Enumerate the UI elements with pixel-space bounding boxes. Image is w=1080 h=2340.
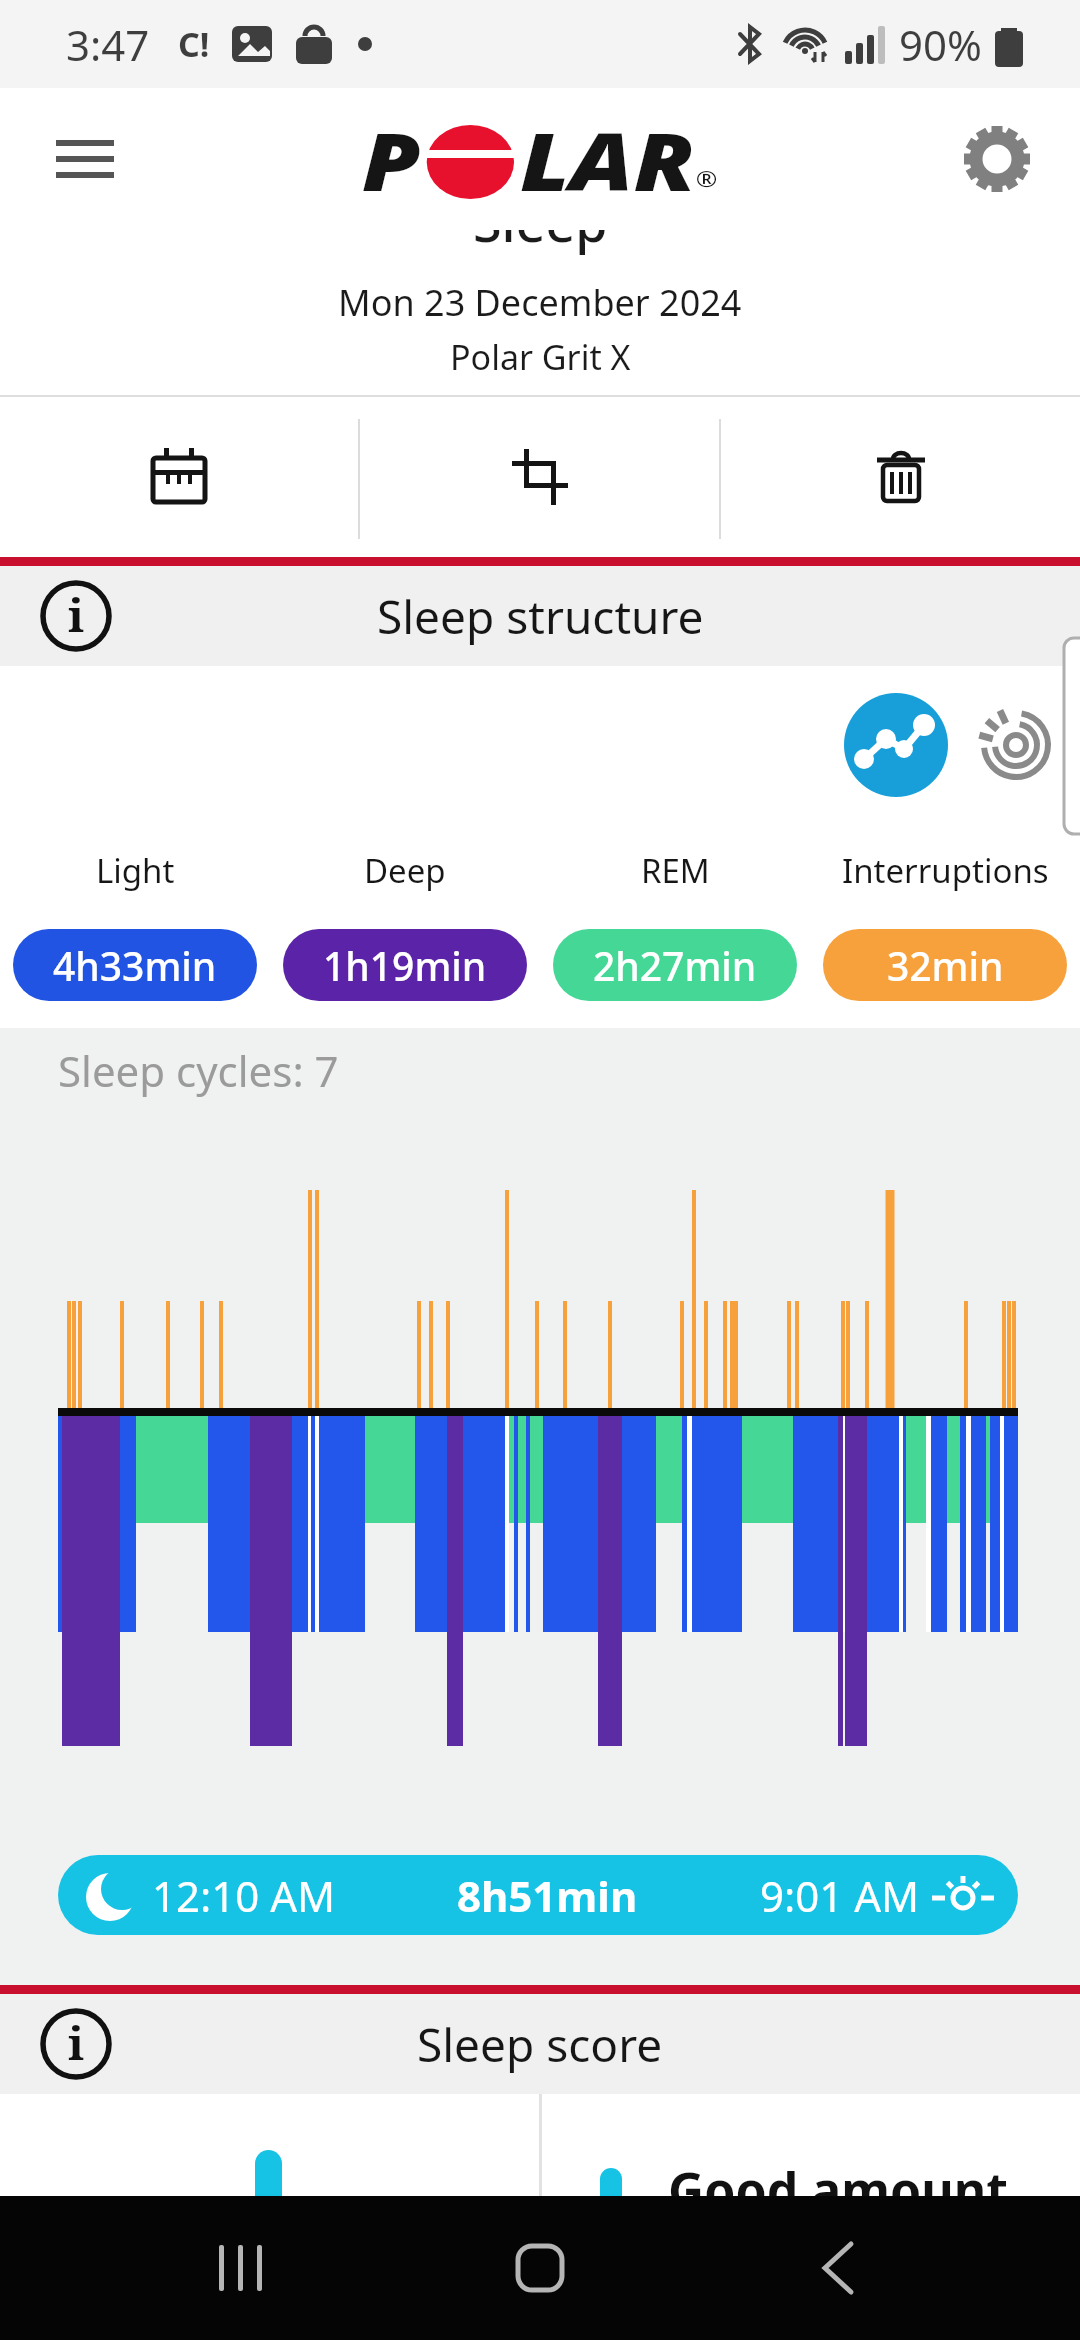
staticText: P: [362, 105, 421, 214]
button[interactable]: [792, 2222, 884, 2314]
button[interactable]: i: [40, 2008, 112, 2080]
button[interactable]: [40, 114, 130, 204]
button[interactable]: i: [40, 580, 112, 652]
staticText: Sleep structure: [377, 585, 704, 648]
button[interactable]: [494, 2222, 586, 2314]
staticText: Mon 23 December 2024: [338, 278, 742, 327]
staticText: ®: [696, 163, 718, 193]
staticText: Light: [96, 848, 175, 893]
staticText: 8h51min: [457, 1867, 638, 1924]
staticText: LAR: [520, 105, 696, 214]
staticText: 4h33min: [53, 939, 217, 992]
staticText: 90%: [899, 16, 982, 73]
staticText: Sleep score: [417, 2013, 663, 2076]
staticText: 2h27min: [593, 939, 757, 992]
staticText: 1h19min: [323, 939, 487, 992]
staticText: Interruptions: [842, 848, 1049, 893]
button[interactable]: [952, 114, 1042, 204]
button[interactable]: [360, 397, 719, 557]
button[interactable]: [0, 397, 358, 557]
staticText: i: [68, 583, 85, 646]
staticText: C!: [178, 21, 210, 67]
staticText: Deep: [364, 848, 446, 893]
button[interactable]: [721, 397, 1080, 557]
staticText: Sleep cycles: 7: [58, 1042, 339, 1099]
button[interactable]: [844, 693, 948, 797]
staticText: 9:01 AM: [760, 1867, 920, 1924]
staticText: 3:47: [66, 16, 150, 73]
staticText: Sleep: [473, 230, 608, 257]
staticText: Good amount: [668, 2156, 1008, 2196]
button[interactable]: [196, 2222, 288, 2314]
staticText: 32min: [887, 939, 1004, 992]
staticText: Polar Grit X: [450, 334, 631, 380]
staticText: 12:10 AM: [152, 1867, 336, 1924]
button[interactable]: [966, 702, 1052, 788]
staticText: i: [68, 2011, 85, 2074]
staticText: REM: [641, 848, 710, 893]
